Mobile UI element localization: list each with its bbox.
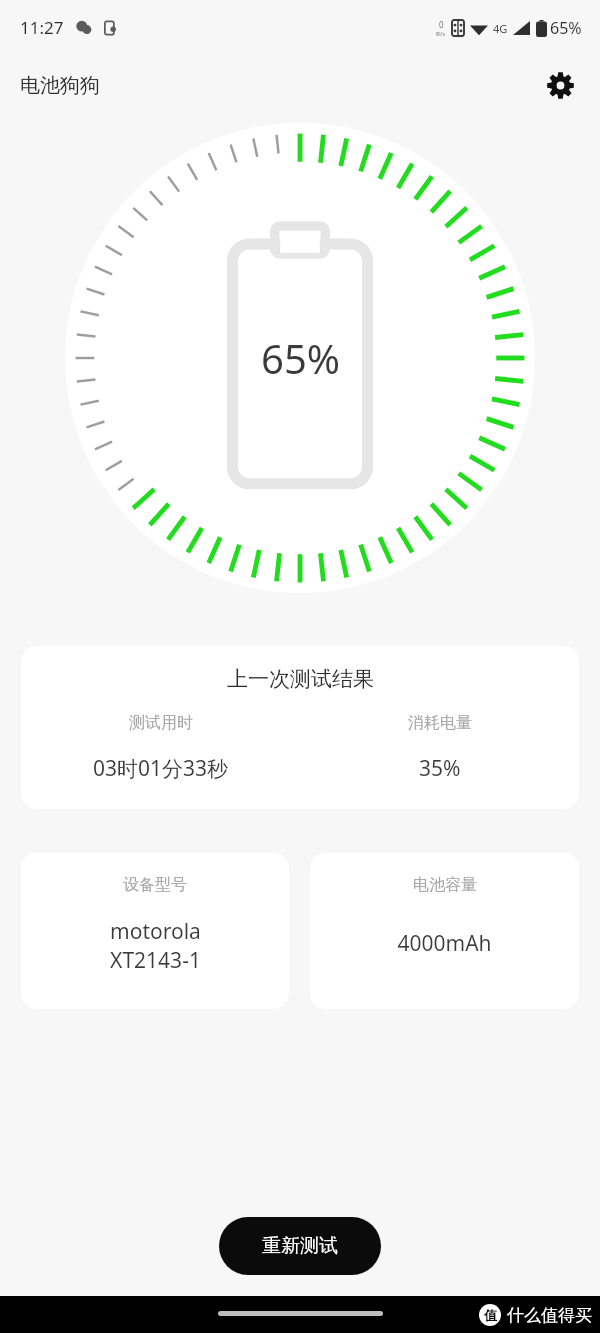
staticText: 设备型号 [123,875,187,895]
staticText: 65% [550,17,582,39]
staticText: 上一次测试结果 [227,666,374,692]
staticText: XT2143-1 [110,946,201,975]
staticText: 电池狗狗 [20,73,100,98]
button[interactable]: Settings [538,63,582,107]
staticText: B/s [436,30,446,38]
staticText: motorola [110,917,201,946]
staticText: 值 [484,1307,497,1323]
staticText: 0 [439,19,444,30]
staticText: 4G [493,21,508,36]
staticText: 03时01分33秒 [93,754,229,783]
button[interactable]: 上一次测试结果 [21,646,579,809]
staticText: 11:27 [20,16,64,39]
staticText: 消耗电量 [408,713,472,733]
staticText: 4000mAh [397,929,492,958]
staticText: 什么值得买 [507,1305,592,1326]
button[interactable]: 电池狗狗 [20,73,100,98]
button[interactable]: 重新测试 [219,1217,381,1275]
staticText: 电池容量 [413,875,477,895]
button[interactable]: 设备型号 [21,853,289,1009]
staticText: 35% [419,754,461,783]
staticText: 测试用时 [129,713,193,733]
staticText: 重新测试 [262,1234,338,1258]
button[interactable]: 电池容量 [310,853,579,1009]
staticText: 65% [261,331,340,385]
